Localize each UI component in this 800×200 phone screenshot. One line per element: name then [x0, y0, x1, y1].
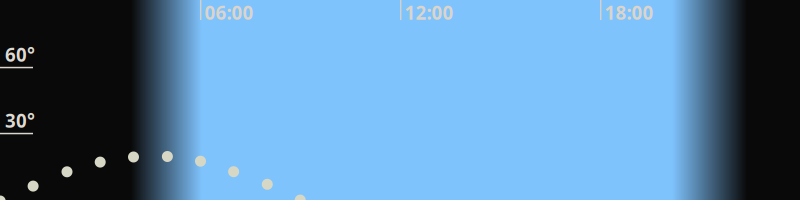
- staticText: 06:00: [204, 0, 253, 25]
- staticText: 18:00: [604, 0, 653, 25]
- staticText: 30°: [5, 108, 35, 133]
- staticText: 12:00: [404, 0, 453, 25]
- staticText: 60°: [5, 42, 35, 67]
